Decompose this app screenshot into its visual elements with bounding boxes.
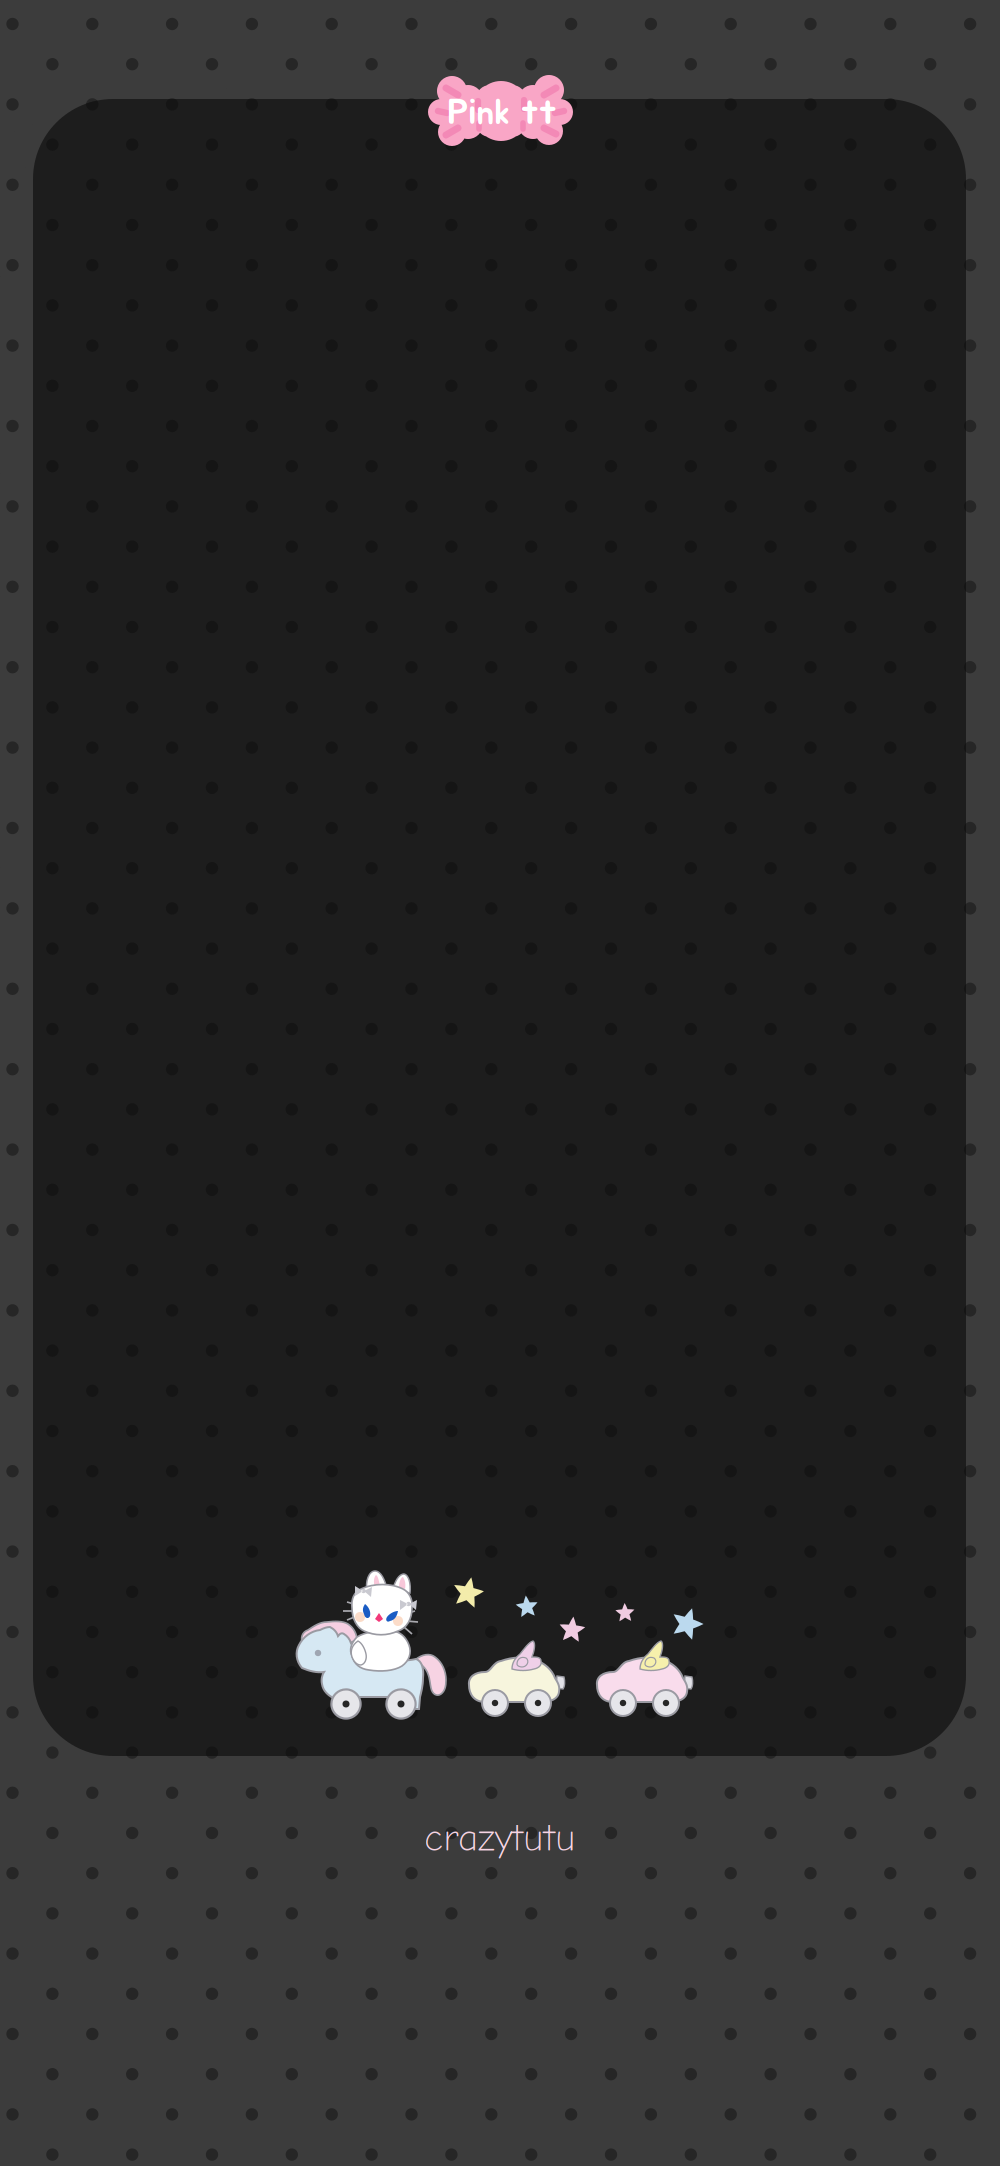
staticText: crazytutu [424, 1816, 576, 1860]
button[interactable]: Pink tt [432, 73, 568, 147]
staticText: Pink tt [447, 95, 556, 131]
button[interactable]: crazytutu [410, 1816, 590, 1860]
